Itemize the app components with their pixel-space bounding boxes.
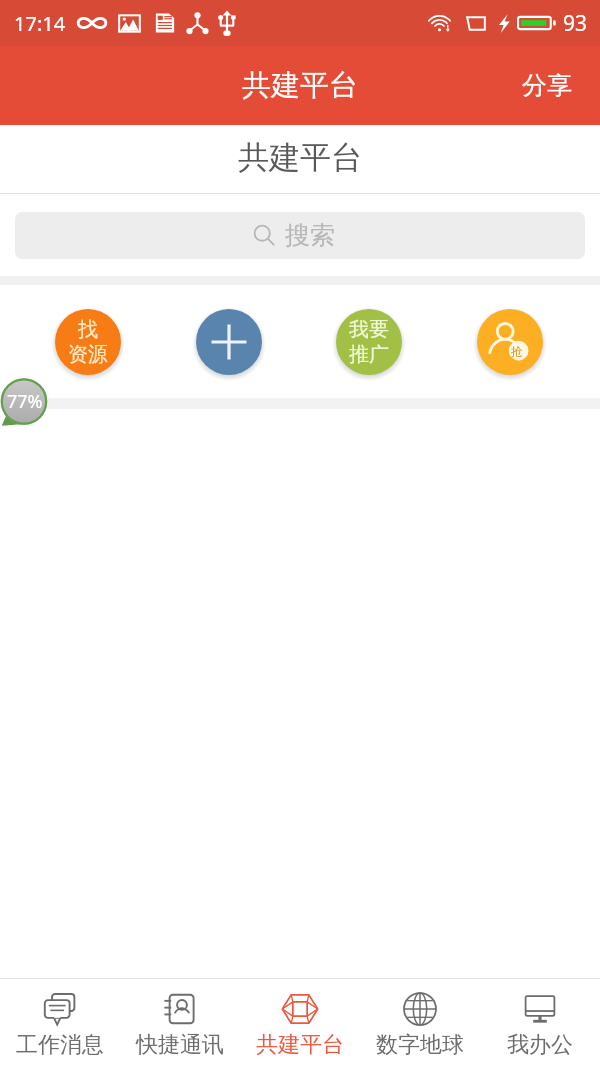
staticText: 推广 [349,342,389,367]
button[interactable]: 添加 [196,309,262,375]
button[interactable]: 快捷通讯 [120,979,240,1067]
button[interactable]: 分享 [500,52,600,119]
button[interactable]: 我要推广 [336,309,402,375]
staticText: 共建平台 [242,67,358,104]
staticText: 抢 [511,344,523,359]
button[interactable]: 搜索 [15,212,585,259]
button[interactable]: 我办公 [480,979,600,1067]
button[interactable]: 进度 77% [0,377,50,427]
staticText: 77% [7,389,43,414]
staticText: 快捷通讯 [136,1031,224,1059]
button[interactable]: 工作消息 [0,979,120,1067]
staticText: 我要 [349,317,389,342]
staticText: 资源 [68,342,108,367]
staticText: 共建平台 [256,1031,344,1059]
staticText: 搜索 [285,220,335,251]
staticText: 数字地球 [376,1031,464,1059]
button[interactable]: 找资源 [55,309,121,375]
staticText: 我办公 [507,1031,573,1059]
button[interactable]: 抢单 [477,309,543,375]
staticText: 分享 [522,70,572,101]
staticText: 找 [78,317,98,342]
staticText: 工作消息 [16,1031,104,1059]
staticText: 共建平台 [238,138,362,177]
button[interactable]: 共建平台 [240,979,360,1067]
button[interactable]: 数字地球 [360,979,480,1067]
staticText: 17:14 [14,10,66,37]
staticText: 93 [563,9,588,38]
